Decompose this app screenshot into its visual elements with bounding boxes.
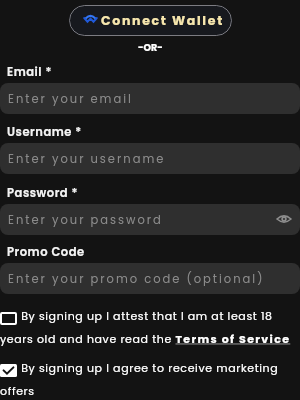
staticText: Promo Code: [7, 244, 85, 260]
staticText: Email *: [7, 64, 52, 80]
button[interactable]: By signing up I agree to receive marketi…: [0, 360, 300, 399]
button[interactable]: Connect Wallet: [69, 5, 232, 36]
button[interactable]: Enter your username: [0, 143, 300, 174]
button[interactable]: By signing up I attest that I am at leas…: [0, 308, 300, 347]
button[interactable]: Show password: [274, 209, 294, 229]
staticText: Connect Wallet: [101, 12, 224, 29]
staticText: -OR-: [138, 41, 163, 54]
staticText: Username *: [7, 124, 82, 140]
staticText: Enter your promo code (optional): [8, 271, 265, 287]
staticText: By signing up I agree to receive marketi…: [0, 360, 300, 399]
staticText: Enter your username: [8, 151, 166, 167]
staticText: By signing up I attest that I am at leas…: [0, 308, 300, 347]
staticText: Enter your password: [8, 212, 163, 228]
button[interactable]: Enter your password: [0, 204, 300, 235]
staticText: Password *: [7, 185, 79, 201]
button[interactable]: Enter your email: [0, 83, 300, 114]
button[interactable]: Enter your promo code (optional): [0, 263, 300, 294]
staticText: Enter your email: [8, 91, 133, 107]
